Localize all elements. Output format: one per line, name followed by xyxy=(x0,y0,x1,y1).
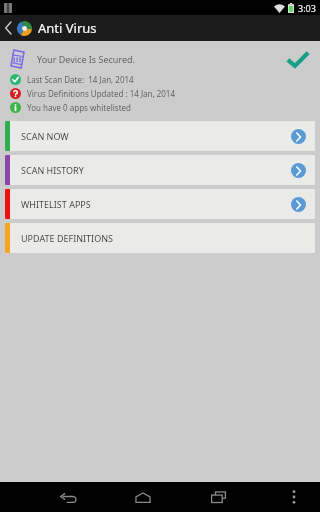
staticText: WHITELIST APPS xyxy=(21,198,91,210)
staticText: UPDATE DEFINITIONS xyxy=(21,232,113,244)
button[interactable]: Open SCAN HISTORY xyxy=(291,163,306,178)
staticText: SCAN NOW xyxy=(21,130,69,142)
button[interactable]: UPDATE DEFINITIONS xyxy=(5,223,315,253)
button[interactable]: Back xyxy=(46,482,88,512)
button[interactable]: Home xyxy=(122,482,164,512)
button[interactable]: Open WHITELIST APPS xyxy=(291,197,306,212)
button[interactable]: Back xyxy=(0,15,17,41)
staticText: You have 0 apps whitelisted xyxy=(27,102,131,113)
button[interactable]: Recent apps xyxy=(198,482,240,512)
staticText: Virus Definitions Updated : 14 Jan, 2014 xyxy=(27,88,176,99)
staticText: Last Scan Date: 14 Jan, 2014 xyxy=(27,74,134,85)
button[interactable]: SCAN NOW xyxy=(5,121,315,151)
staticText: Your Device Is Secured. xyxy=(37,53,135,65)
button[interactable]: SCAN HISTORY xyxy=(5,155,315,185)
button[interactable]: WHITELIST APPS xyxy=(5,189,315,219)
button[interactable]: Open SCAN NOW xyxy=(291,129,306,144)
staticText: 3:03 xyxy=(298,2,316,14)
button[interactable]: More options xyxy=(277,482,311,512)
staticText: SCAN HISTORY xyxy=(21,164,84,176)
staticText: Anti Virus xyxy=(38,19,97,37)
